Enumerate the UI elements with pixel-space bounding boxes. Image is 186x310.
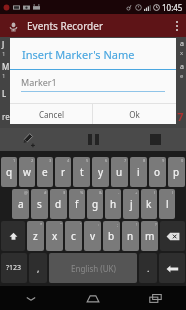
button[interactable]: o [149,157,166,187]
button[interactable]: q [1,157,17,187]
staticText: a [18,197,24,211]
staticText: b [108,229,115,243]
button[interactable]: h [105,189,121,219]
staticText: 9 [162,158,165,163]
staticText: o [154,165,161,179]
staticText: 10:45 [162,2,183,13]
button[interactable]: w [19,157,35,187]
staticText: 5 [86,158,89,163]
button[interactable]: s [31,189,48,219]
staticText: j [130,197,133,211]
button[interactable]: , [29,253,47,283]
staticText: 7 [124,158,127,163]
button[interactable]: Delete [160,221,185,251]
button[interactable]: f [69,189,85,219]
staticText: ; [117,222,119,227]
staticText: 1 [2,72,6,80]
staticText: ? [155,222,157,227]
button[interactable]: More options [168,14,186,37]
button[interactable]: a [12,189,29,219]
button[interactable]: k [141,189,157,219]
staticText: M [2,61,10,72]
staticText: s [37,197,42,211]
staticText: ' [80,222,81,227]
button[interactable]: Shift [1,221,25,251]
staticText: $ [63,190,66,195]
staticText: * [40,222,43,227]
staticText: 0 [181,158,184,163]
staticText: i [137,165,140,179]
button[interactable]: g [87,189,103,219]
button[interactable]: z [27,221,44,251]
staticText: x [180,49,184,57]
button[interactable]: Pause [62,128,124,151]
button[interactable]: j [123,189,139,219]
staticText: z [33,229,38,243]
staticText: " [60,222,62,227]
button[interactable]: English (UK) [49,253,137,283]
button[interactable]: n [122,221,139,251]
button[interactable]: p [168,157,185,187]
staticText: Ok [129,109,140,120]
button[interactable]: Home [62,286,124,310]
button[interactable]: d [50,189,67,219]
button[interactable]: b [103,221,120,251]
staticText: Marker1 [21,76,57,88]
button[interactable]: y [92,157,109,187]
button[interactable]: x [46,221,63,251]
button[interactable]: Microphone [0,14,186,37]
staticText: m [145,229,155,243]
button[interactable]: Recent apps [124,286,186,310]
button[interactable]: l [159,189,175,219]
staticText: t [80,165,84,179]
staticText: r [61,165,66,179]
button[interactable]: t [73,157,90,187]
staticText: 3 [49,158,52,163]
staticText: q [6,165,13,179]
staticText: k [146,197,152,211]
staticText: & [99,190,102,195]
staticText: , [37,262,40,274]
button[interactable]: u [111,157,128,187]
button[interactable]: r [55,157,71,187]
staticText: % [80,190,84,195]
staticText: y [98,165,104,179]
staticText: 1 [2,50,6,58]
button[interactable]: m [141,221,158,251]
staticText: a [180,62,184,72]
staticText: English (UK) [71,263,116,274]
staticText: u [116,165,123,179]
button[interactable]: v [84,221,101,251]
button[interactable]: Back [0,286,62,310]
staticText: p [173,165,180,179]
button[interactable]: . [139,253,157,283]
button[interactable]: e [37,157,53,187]
staticText: f [75,197,79,211]
staticText: h [110,197,117,211]
staticText: 4 [67,158,70,163]
staticText: + [135,190,138,195]
staticText: 6 [105,158,108,163]
staticText: g [92,197,99,211]
button[interactable]: i [130,157,147,187]
button[interactable]: Stop [124,128,186,151]
staticText: e [180,72,184,80]
staticText: ?123 [6,263,22,273]
button[interactable]: Add marker [0,128,62,151]
staticText: ( [154,190,156,195]
staticText: ! [136,222,138,227]
staticText: c [71,229,76,243]
button[interactable]: ?123 [1,253,27,283]
staticText: x [52,229,58,243]
staticText: 2 [31,158,34,163]
staticText: L [2,88,7,99]
button[interactable]: Ok [93,104,176,124]
staticText: Cancel [39,109,64,120]
button[interactable]: Enter [159,253,185,283]
staticText: d [55,197,62,211]
staticText: 8 [143,158,146,163]
staticText: : [98,222,100,227]
staticText: Events Recorder [27,19,104,33]
button[interactable]: Cancel [10,104,92,124]
button[interactable]: c [65,221,82,251]
